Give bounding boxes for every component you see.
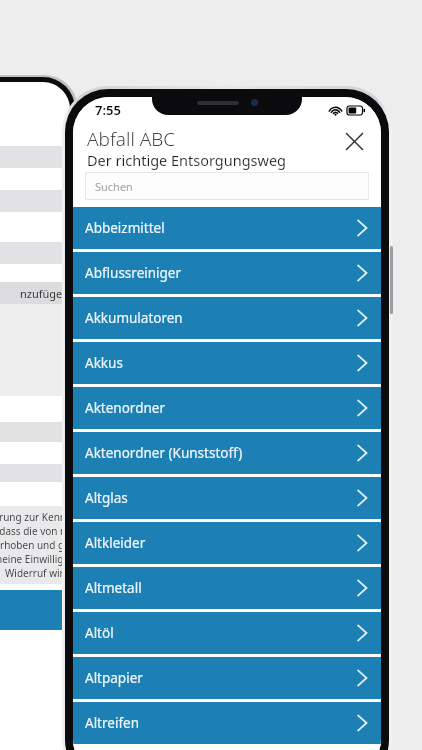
staticText: Altpapier	[85, 669, 357, 687]
button[interactable]	[0, 590, 70, 630]
staticText: , dass die von m	[0, 524, 70, 538]
staticText: Akkus	[85, 354, 357, 372]
button[interactable]: Aktenordner	[73, 387, 381, 429]
staticText: Altmetall	[85, 579, 357, 597]
staticText: Der richtige Entsorgungsweg	[87, 150, 287, 170]
staticText: neine Einwilligu	[0, 552, 70, 566]
staticText: rhoben und ge	[0, 538, 70, 552]
button[interactable]: Altkleider	[73, 522, 381, 564]
button[interactable]: Altpapier	[73, 657, 381, 699]
button[interactable]: Akkus	[73, 342, 381, 384]
staticText: Aktenordner	[85, 399, 357, 417]
staticText: Abfall ABC	[87, 126, 176, 152]
button[interactable]: Abflussreiniger	[73, 252, 381, 294]
staticText: Suchen	[95, 179, 133, 194]
staticText: Abflussreiniger	[85, 264, 357, 282]
staticText: 7:55	[95, 101, 121, 119]
staticText: Altreifen	[85, 714, 357, 732]
staticText: Altglas	[85, 489, 357, 507]
staticText: Aktenordner (Kunststoff)	[85, 444, 357, 462]
button[interactable]: Suchen	[85, 172, 369, 200]
staticText: Widerruf wird	[5, 566, 70, 580]
staticText: Altkleider	[85, 534, 357, 552]
button[interactable]: Altreifen	[73, 702, 381, 744]
button[interactable]: Altmetall	[73, 567, 381, 609]
staticText: Abbeizmittel	[85, 219, 357, 237]
button[interactable]: Aktenordner (Kunststoff)	[73, 432, 381, 474]
button[interactable]: Altglas	[73, 477, 381, 519]
staticText: rung zur Kennt	[0, 510, 70, 524]
staticText: Altöl	[85, 624, 357, 642]
button[interactable]: nzufügen	[0, 282, 70, 304]
button[interactable]: Schließen	[339, 126, 369, 156]
button[interactable]: Altöl	[73, 612, 381, 654]
button[interactable]: Abbeizmittel	[73, 207, 381, 249]
staticText: nzufügen	[20, 286, 70, 301]
button[interactable]: Akkumulatoren	[73, 297, 381, 339]
staticText: Akkumulatoren	[85, 309, 357, 327]
